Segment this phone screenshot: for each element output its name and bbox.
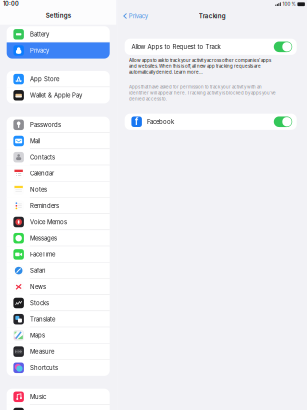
staticText: Facebook	[147, 118, 174, 125]
staticText: Tracking	[199, 12, 226, 20]
staticText: Apps that have asked for permission to t…	[129, 84, 276, 102]
button[interactable]: Mail	[7, 133, 110, 149]
button[interactable]: FaceTime	[7, 246, 110, 262]
button[interactable]: Allow Apps to Request to Track	[125, 39, 297, 55]
button[interactable]: App Store	[7, 71, 110, 87]
button[interactable]: Wallet & Apple Pay	[7, 87, 110, 103]
button[interactable]: Reminders	[7, 198, 110, 214]
staticText: Maps	[30, 332, 45, 339]
staticText: App Store	[30, 75, 59, 83]
staticText: Music	[30, 393, 46, 400]
staticText: 100 %	[283, 1, 296, 7]
button[interactable]: News	[7, 279, 110, 295]
staticText: Wallet & Apple Pay	[30, 92, 82, 99]
staticText: Translate	[30, 316, 55, 323]
staticText: 10:00	[3, 0, 19, 7]
staticText: Mail	[30, 137, 40, 145]
button[interactable]: Contacts	[7, 149, 110, 165]
staticText: Reminders	[30, 202, 59, 209]
staticText: Calendar	[30, 170, 54, 177]
staticText: Allow Apps to Request to Track	[131, 43, 220, 50]
button[interactable]: Messages	[7, 230, 110, 246]
button[interactable]: Music	[7, 389, 110, 405]
button[interactable]: Privacy	[117, 11, 150, 21]
staticText: Privacy	[129, 12, 148, 20]
button[interactable]: Passwords	[7, 117, 110, 133]
staticText: Measure	[30, 348, 54, 355]
button[interactable]: Measure	[7, 343, 110, 360]
staticText: Battery	[30, 31, 49, 38]
staticText: FaceTime	[30, 251, 55, 258]
button[interactable]: Notes	[7, 181, 110, 198]
staticText: Notes	[30, 186, 47, 193]
staticText: Passwords	[30, 121, 61, 128]
button[interactable]: Battery	[7, 26, 110, 42]
staticText: News	[30, 283, 46, 290]
staticText: Safari	[30, 267, 45, 274]
button[interactable]: Maps	[7, 327, 110, 343]
staticText: Voice Memos	[30, 218, 67, 226]
staticText: Allow apps to ask to track your activity…	[129, 58, 271, 75]
button[interactable]: Calendar	[7, 165, 110, 181]
staticText: Privacy	[30, 47, 49, 54]
staticText: Stocks	[30, 299, 49, 307]
staticText: f	[135, 116, 139, 127]
button[interactable]: f	[125, 114, 297, 130]
staticText: Settings	[46, 12, 71, 19]
button[interactable]: Shortcuts	[7, 360, 110, 376]
staticText: Shortcuts	[30, 364, 58, 371]
button[interactable]: Privacy	[7, 42, 110, 59]
button[interactable]: TV	[7, 405, 110, 410]
button[interactable]: Translate	[7, 311, 110, 327]
staticText: Messages	[30, 235, 57, 242]
button[interactable]: Safari	[7, 262, 110, 279]
button[interactable]: Stocks	[7, 295, 110, 311]
button[interactable]: Voice Memos	[7, 214, 110, 230]
staticText: Contacts	[30, 154, 55, 161]
